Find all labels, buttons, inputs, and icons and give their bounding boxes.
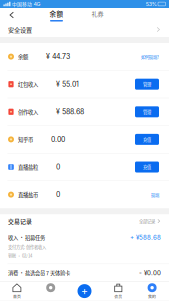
- button[interactable]: [34, 281, 68, 301]
- staticText: 交易记录: [8, 217, 32, 225]
- staticText: 充值: [143, 164, 151, 170]
- button[interactable]: 管理: [135, 106, 159, 117]
- staticText: 4G: [34, 1, 41, 7]
- staticText: ¥ 55.01: [56, 80, 79, 88]
- staticText: 0: [56, 190, 60, 199]
- staticText: 余额: [49, 9, 63, 18]
- button[interactable]: 如何提现?: [141, 53, 159, 60]
- staticText: 充值: [143, 136, 151, 142]
- staticText: 消费 · 盐选会员 7 天体验卡: [8, 269, 70, 277]
- staticText: 创作收入: [18, 108, 38, 116]
- staticText: 中国移动: [12, 0, 32, 7]
- button[interactable]: 全部记录: [139, 218, 161, 224]
- staticText: + ¥588.68: [130, 234, 161, 241]
- staticText: 提现: [151, 191, 159, 198]
- staticText: 收入 · 招募任务: [8, 234, 45, 241]
- staticText: 礼券: [91, 9, 103, 18]
- staticText: 我的: [148, 293, 156, 299]
- button[interactable]: 首页: [0, 281, 34, 301]
- staticText: 支付方式: 创作者收入: [8, 244, 46, 250]
- staticText: 直播盐币: [18, 191, 38, 198]
- staticText: 53%: [146, 1, 157, 7]
- button[interactable]: 安全设置: [0, 22, 169, 37]
- button[interactable]: 管理: [135, 79, 159, 90]
- button[interactable]: 会员: [101, 281, 135, 301]
- button[interactable]: 充值: [135, 161, 159, 172]
- staticText: 首页: [13, 293, 21, 299]
- staticText: 红包收入: [18, 80, 38, 88]
- button[interactable]: 消费 · 盐选会员 7 天体验卡: [0, 264, 169, 282]
- staticText: 余额: [18, 53, 28, 60]
- button[interactable]: 充值: [135, 134, 159, 145]
- staticText: 全部记录: [139, 218, 155, 224]
- staticText: 管理: [143, 109, 151, 115]
- staticText: ¥ 588.68: [56, 108, 84, 116]
- staticText: 会员: [114, 293, 122, 299]
- staticText: 0: [56, 163, 60, 171]
- button[interactable]: 礼券: [77, 9, 118, 19]
- staticText: 0.00: [51, 135, 65, 144]
- staticText: 如何提现?: [141, 53, 159, 60]
- staticText: +: [81, 285, 88, 297]
- button[interactable]: 我的: [135, 281, 169, 301]
- staticText: 到账 · 02/14: [8, 252, 32, 259]
- button[interactable]: 收入 · 招募任务: [0, 229, 169, 264]
- button[interactable]: 余额: [36, 9, 77, 19]
- staticText: 安全设置: [8, 25, 32, 34]
- staticText: 管理: [143, 81, 151, 87]
- staticText: ¥ 44.73: [46, 52, 70, 61]
- button[interactable]: 提现: [151, 191, 159, 198]
- staticText: 知乎币: [18, 135, 33, 143]
- button[interactable]: Create: [68, 281, 101, 301]
- staticText: - ¥0.00: [139, 269, 161, 277]
- button[interactable]: Back: [0, 8, 24, 21]
- staticText: 直播盐粒: [18, 163, 38, 171]
